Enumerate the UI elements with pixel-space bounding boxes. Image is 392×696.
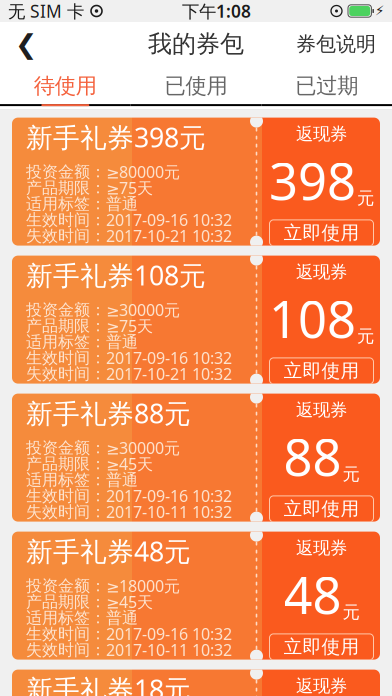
staticText: ❮ xyxy=(15,29,37,59)
staticText: ⚡︎ xyxy=(375,3,384,18)
staticText: ≥30000元 xyxy=(106,437,180,458)
staticText: 2017-10-11 10:32 xyxy=(106,501,232,522)
staticText: 返现券 xyxy=(296,675,347,696)
staticText: 已过期 xyxy=(295,73,358,99)
staticText: ≥75天 xyxy=(106,177,153,198)
staticText: 生效时间： xyxy=(26,624,106,644)
staticText: 48 xyxy=(283,561,341,628)
staticText: 398 xyxy=(269,147,356,214)
staticText: 2017-10-21 10:32 xyxy=(106,225,232,246)
staticText xyxy=(84,0,90,26)
staticText: ≥80000元 xyxy=(106,161,180,182)
staticText: 立即使用 xyxy=(283,359,359,382)
staticText: 失效时间： xyxy=(26,226,106,246)
staticText: 普通 xyxy=(106,470,138,490)
staticText: 我的券包 xyxy=(148,29,244,59)
staticText: 新手礼券18元 xyxy=(26,671,191,696)
button[interactable]: 立即使用 xyxy=(269,358,373,384)
staticText: 无 SIM 卡 xyxy=(8,0,84,22)
staticText: 108 xyxy=(269,285,356,352)
staticText: 2017-09-16 10:32 xyxy=(106,347,232,368)
staticText: 2017-09-16 10:32 xyxy=(106,485,232,506)
staticText: 2017-09-16 10:32 xyxy=(106,209,232,230)
staticText: 元 xyxy=(342,464,359,485)
staticText: 普通 xyxy=(106,332,138,352)
staticText: 券包说明 xyxy=(296,32,376,56)
staticText: 88 xyxy=(283,423,341,490)
staticText: 返现券 xyxy=(296,537,347,559)
button[interactable]: 待使用 xyxy=(0,66,131,109)
staticText: 下午1:08 xyxy=(182,0,251,22)
staticText: 失效时间： xyxy=(26,502,106,522)
button[interactable]: 立即使用 xyxy=(269,220,373,246)
staticText: 生效时间： xyxy=(26,210,106,230)
staticText: 新手礼券48元 xyxy=(26,533,191,569)
staticText: 适用标签： xyxy=(26,470,106,490)
staticText: 立即使用 xyxy=(283,221,359,244)
staticText: ≥45天 xyxy=(106,591,153,612)
staticText: 失效时间： xyxy=(26,364,106,384)
staticText: 投资金额： xyxy=(26,576,106,596)
staticText: 返现券 xyxy=(296,399,347,421)
staticText: 2017-10-21 10:32 xyxy=(106,363,232,384)
staticText: ≥30000元 xyxy=(106,299,180,320)
staticText: 产品期限： xyxy=(26,592,106,612)
staticText: 产品期限： xyxy=(26,316,106,336)
staticText: 元 xyxy=(357,326,374,347)
staticText: 待使用 xyxy=(34,73,97,99)
button[interactable]: Back xyxy=(4,22,48,66)
staticText: 普通 xyxy=(106,608,138,628)
staticText: 普通 xyxy=(106,194,138,214)
button[interactable]: 立即使用 xyxy=(269,634,373,660)
staticText: 产品期限： xyxy=(26,178,106,198)
button[interactable]: 券包说明 xyxy=(284,22,388,66)
staticText: 返现券 xyxy=(296,261,347,283)
staticText: ≥75天 xyxy=(106,315,153,336)
staticText: 已使用 xyxy=(164,73,227,99)
staticText: 返现券 xyxy=(296,123,347,145)
staticText: 生效时间： xyxy=(26,348,106,368)
staticText: 元 xyxy=(342,602,359,623)
staticText: 投资金额： xyxy=(26,162,106,182)
staticText: 元 xyxy=(357,188,374,209)
staticText: 新手礼券88元 xyxy=(26,395,191,431)
staticText: 投资金额： xyxy=(26,438,106,458)
staticText: ≥18000元 xyxy=(106,575,180,596)
staticText: ≥45天 xyxy=(106,453,153,474)
staticText: 投资金额： xyxy=(26,300,106,320)
staticText: 适用标签： xyxy=(26,194,106,214)
staticText: 立即使用 xyxy=(283,497,359,520)
staticText: 适用标签： xyxy=(26,608,106,628)
staticText: 失效时间： xyxy=(26,640,106,660)
staticText: 立即使用 xyxy=(283,635,359,658)
staticText: 产品期限： xyxy=(26,454,106,474)
button[interactable]: 已过期 xyxy=(261,66,392,109)
staticText: 2017-10-11 10:32 xyxy=(106,639,232,660)
staticText: 2017-09-16 10:32 xyxy=(106,623,232,644)
staticText: 新手礼券398元 xyxy=(26,119,206,155)
staticText: 生效时间： xyxy=(26,486,106,506)
button[interactable]: 已使用 xyxy=(131,66,261,109)
button[interactable]: 立即使用 xyxy=(269,496,373,522)
staticText: 新手礼券108元 xyxy=(26,257,206,293)
staticText: 适用标签： xyxy=(26,332,106,352)
